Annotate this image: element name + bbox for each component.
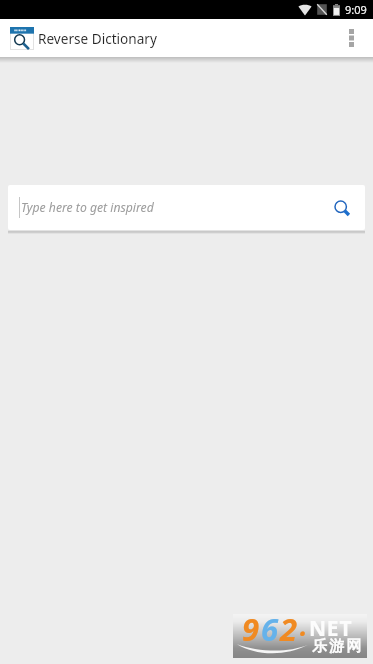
staticText: 乐游网 [312, 637, 364, 656]
button[interactable]: Type here to get inspired [8, 185, 365, 230]
staticText: 2 [280, 608, 299, 650]
staticText: NET [309, 614, 353, 643]
staticText: 6 [261, 608, 280, 650]
staticText: Reverse Dictionary [38, 29, 157, 48]
staticText: Type here to get inspired [21, 199, 154, 216]
staticText: 9 [242, 608, 261, 650]
staticText: 9:09 [345, 2, 367, 17]
staticText: . [300, 608, 309, 643]
button[interactable]: Search [321, 185, 365, 230]
button[interactable]: More options [329, 19, 373, 57]
